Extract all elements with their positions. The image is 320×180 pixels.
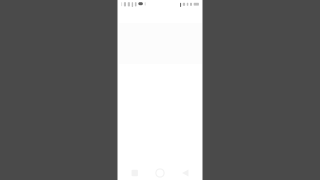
button[interactable]: Home [152,166,168,180]
button[interactable]: Back [177,166,193,180]
button[interactable]: Recent apps [127,166,143,180]
